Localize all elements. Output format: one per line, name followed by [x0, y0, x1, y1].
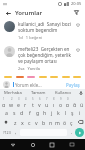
staticText: w	[9, 101, 14, 107]
staticText: mefteli23 Gerçekten en çok beğendiğim, y…	[18, 46, 72, 64]
staticText: m	[55, 119, 60, 126]
button[interactable]: Emoji	[4, 76, 12, 78]
staticText: g	[36, 109, 40, 116]
button[interactable]: 8	[50, 97, 57, 107]
button[interactable]: k	[55, 107, 62, 117]
button[interactable]: Emoji	[16, 76, 24, 78]
button[interactable]: a	[2, 107, 10, 117]
button[interactable]: f	[26, 107, 34, 117]
button[interactable]: Emoji	[27, 76, 35, 78]
button[interactable]: l	[62, 107, 69, 117]
staticText: 1	[3, 97, 5, 101]
button[interactable]: Send	[75, 128, 84, 137]
button[interactable]: 7	[43, 97, 50, 107]
button[interactable]: x	[19, 117, 26, 127]
button[interactable]: .	[68, 127, 75, 138]
button[interactable]: mefteli23 Gerçekten en çok beğendiğim, y…	[0, 43, 85, 74]
button[interactable]: ö	[61, 117, 68, 127]
staticText: t	[32, 101, 34, 107]
button[interactable]: Merhaba	[0, 89, 26, 97]
staticText: ç	[70, 119, 73, 126]
button[interactable]: h	[41, 107, 48, 117]
staticText: y	[38, 101, 41, 107]
staticText: ?123	[3, 130, 11, 135]
button[interactable]: d	[18, 107, 26, 117]
staticText: p	[66, 101, 70, 107]
button[interactable]: Like	[74, 46, 81, 53]
button[interactable]: n	[47, 117, 54, 127]
button[interactable]: v	[33, 117, 40, 127]
button[interactable]: Like	[74, 21, 81, 28]
staticText: h	[43, 109, 47, 116]
button[interactable]: 9	[57, 97, 64, 107]
button[interactable]: 6	[36, 97, 43, 107]
button[interactable]: 4	[22, 97, 29, 107]
staticText: ğ	[73, 101, 77, 107]
button[interactable]: Back	[7, 139, 19, 150]
button[interactable]: s	[10, 107, 18, 117]
staticText: 8	[53, 97, 55, 101]
staticText: n	[49, 119, 53, 126]
staticText: v	[35, 119, 38, 126]
staticText: ö	[63, 119, 67, 126]
button[interactable]: Emoji	[73, 76, 81, 78]
button[interactable]: Home	[27, 139, 39, 150]
button[interactable]: ş	[69, 107, 76, 117]
staticText: x	[21, 119, 24, 126]
button[interactable]: Paylaş	[64, 82, 82, 88]
staticText: 20:05	[71, 1, 82, 6]
button[interactable]: Yorum ekle...	[15, 82, 64, 88]
button[interactable]: g	[34, 107, 41, 117]
button[interactable]: ç	[68, 117, 75, 127]
button[interactable]: j	[48, 107, 55, 117]
staticText: ,	[15, 129, 17, 136]
button[interactable]: Tamam	[26, 89, 51, 97]
staticText: 2	[11, 97, 13, 101]
staticText: 0	[67, 97, 69, 101]
staticText: Yorumlar	[15, 9, 43, 17]
staticText: a	[5, 109, 8, 116]
staticText: 1d 1 beğeni	[18, 35, 43, 40]
button[interactable]: Keyboard hide	[66, 139, 78, 150]
button[interactable]: b	[40, 117, 47, 127]
button[interactable]: Shift	[0, 117, 11, 127]
button[interactable]: c	[26, 117, 33, 127]
button[interactable]: Recents	[46, 139, 58, 150]
staticText: 6	[39, 97, 41, 101]
staticText: 5	[32, 97, 34, 101]
staticText: 2sa Yanıtla	[18, 66, 41, 71]
staticText: f	[29, 109, 31, 116]
staticText: e	[17, 101, 20, 107]
button[interactable]: 3	[15, 97, 22, 107]
button[interactable]: 2	[8, 97, 15, 107]
button[interactable]: 1	[0, 97, 8, 107]
staticText: kullanici_adi Sanayi bozi soktum begendi…	[18, 21, 72, 33]
button[interactable]: Filter	[72, 8, 81, 17]
button[interactable]: ,	[12, 127, 19, 138]
staticText: ı	[53, 101, 55, 107]
button[interactable]: Back	[4, 9, 12, 17]
staticText: q	[2, 101, 6, 107]
button[interactable]: Kullanıcı	[51, 89, 76, 97]
staticText: 7	[46, 97, 48, 101]
staticText: i	[79, 109, 81, 116]
button[interactable]: 5	[29, 97, 36, 107]
button[interactable]: z	[11, 117, 19, 127]
button[interactable]: 0	[64, 97, 71, 107]
staticText: ü	[80, 101, 84, 107]
button[interactable]: Voice input	[76, 89, 85, 97]
staticText: r	[24, 101, 27, 107]
staticText: Merhaba	[4, 90, 22, 96]
button[interactable]: ?123	[1, 127, 12, 138]
button[interactable]: Emoji	[50, 76, 58, 78]
button[interactable]: m	[54, 117, 61, 127]
button[interactable]: ü	[78, 97, 85, 107]
staticText: l	[65, 109, 67, 116]
button[interactable]: ğ	[71, 97, 78, 107]
button[interactable]: Emoji	[39, 76, 47, 78]
button[interactable]: i	[76, 107, 83, 117]
button[interactable]: Emoji	[62, 76, 70, 78]
button[interactable]: kullanici_adi Sanayi bozi soktum begendi…	[0, 18, 85, 43]
button[interactable]: Backspace	[75, 117, 85, 127]
